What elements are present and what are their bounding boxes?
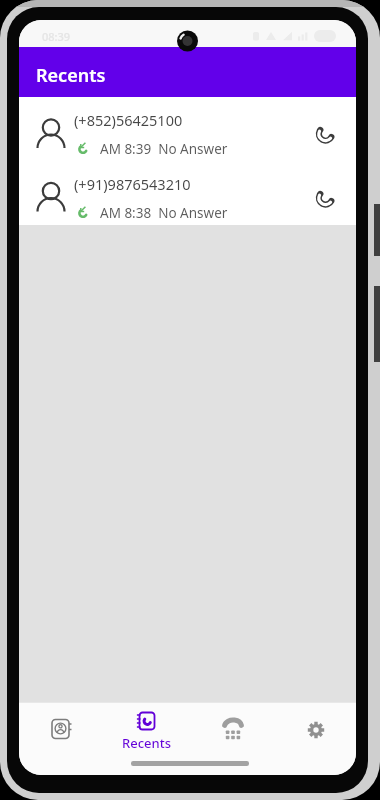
staticText: AM 8:38 No Answer: [100, 204, 228, 222]
staticText: (+91)9876543210: [74, 174, 191, 194]
button[interactable]: [19, 97, 356, 161]
button[interactable]: [19, 47, 356, 97]
button[interactable]: [103, 702, 188, 775]
button[interactable]: [188, 702, 273, 775]
staticText: 08:39: [42, 29, 71, 43]
button[interactable]: [19, 161, 356, 225]
button[interactable]: [19, 702, 103, 775]
staticText: Recents: [36, 63, 106, 88]
staticText: (+852)56425100: [74, 110, 183, 130]
staticText: Recents: [122, 734, 171, 750]
staticText: AM 8:39 No Answer: [100, 140, 228, 158]
button[interactable]: [273, 702, 356, 775]
